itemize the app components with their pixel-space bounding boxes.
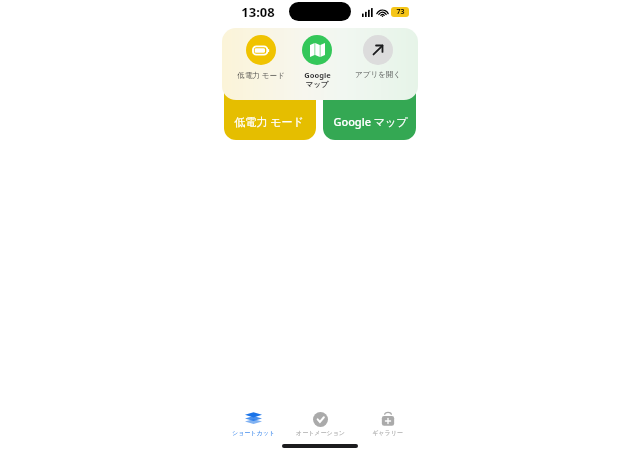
staticText: Google マップ	[333, 114, 408, 129]
staticText: 低電力 モード	[234, 114, 304, 129]
other: Automation	[313, 412, 328, 427]
button[interactable]: Google Maps	[292, 35, 342, 89]
staticText: ショートカット	[232, 429, 275, 437]
other: Google Maps	[302, 35, 332, 65]
button[interactable]: Gallery	[354, 410, 421, 439]
staticText: 低電力 モード	[237, 70, 285, 80]
button[interactable]: Automation	[287, 410, 354, 439]
staticText: アプリを開く	[355, 70, 401, 79]
button[interactable]: Low Power Mode	[230, 35, 292, 80]
button[interactable]: Google マップ	[323, 30, 416, 140]
staticText: 13:08	[241, 3, 275, 21]
staticText: Google	[304, 70, 331, 80]
button[interactable]: 低電力 モード	[224, 30, 316, 140]
button[interactable]: Shortcuts	[219, 410, 287, 439]
button[interactable]: Open App	[342, 35, 414, 79]
other: Gallery	[381, 412, 395, 427]
staticText: オートメーション	[296, 429, 345, 437]
staticText: 73	[396, 7, 405, 17]
other: Open App	[363, 35, 393, 65]
staticText: ギャラリー	[372, 429, 403, 437]
staticText: マップ	[305, 80, 329, 89]
other: Low Power Mode	[246, 35, 276, 65]
other: Shortcuts	[245, 412, 262, 427]
